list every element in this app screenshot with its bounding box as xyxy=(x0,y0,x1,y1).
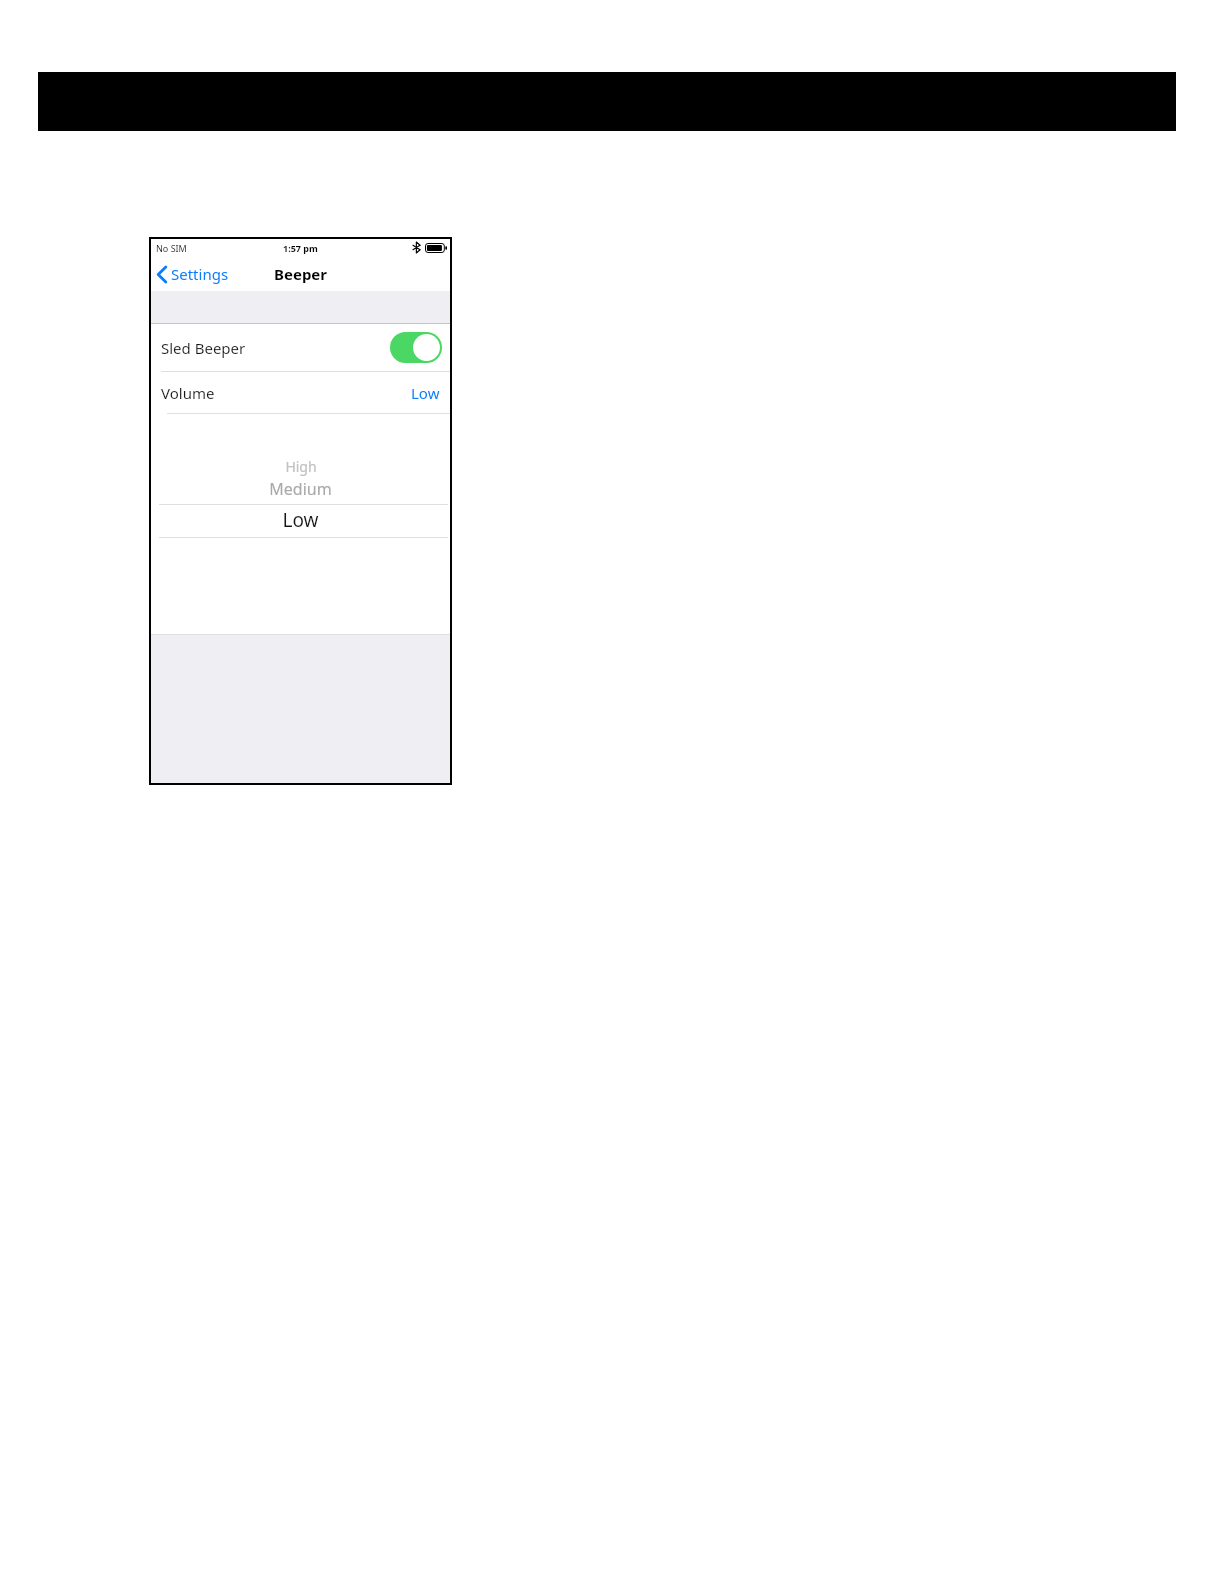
staticText: 1:57 pm xyxy=(283,242,318,254)
button[interactable]: Volume xyxy=(151,372,450,413)
button[interactable]: Settings xyxy=(151,259,239,289)
button[interactable]: High xyxy=(285,457,317,476)
button[interactable]: Sled Beeper, on xyxy=(390,332,442,363)
button[interactable]: Medium xyxy=(269,478,332,500)
staticText: Beeper xyxy=(274,264,328,284)
staticText: Sled Beeper xyxy=(161,338,246,358)
button[interactable]: Low xyxy=(282,507,319,533)
button[interactable]: Sled Beeper xyxy=(151,324,450,371)
staticText: Low xyxy=(411,383,440,403)
staticText: Settings xyxy=(171,264,229,284)
staticText: No SIM xyxy=(156,242,187,254)
staticText: Volume xyxy=(161,383,215,403)
